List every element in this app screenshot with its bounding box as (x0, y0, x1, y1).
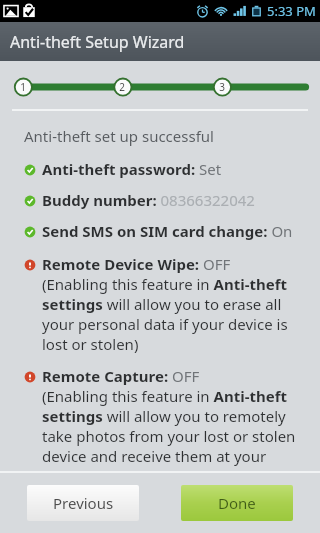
staticText: Send SMS on SIM card change: On (42, 221, 293, 241)
staticText: (Enabling this feature in Anti-theft set… (42, 274, 312, 354)
staticText: Remote Device Wipe: OFF (42, 254, 231, 274)
staticText: 2 (119, 80, 125, 94)
staticText: Anti-theft password: Set (42, 159, 222, 179)
staticText: 1 (20, 80, 26, 94)
staticText: Remote Capture: OFF (42, 366, 200, 386)
staticText: Anti-theft Setup Wizard (10, 31, 185, 53)
staticText: 3 (219, 80, 225, 94)
staticText: Previous (53, 493, 114, 513)
staticText: Anti-theft set up successful (24, 126, 214, 146)
staticText: 5:33 PM (267, 2, 316, 20)
button[interactable]: Done (181, 485, 293, 521)
staticText: (Enabling this feature in Anti-theft set… (42, 386, 312, 471)
button[interactable]: Previous (27, 485, 139, 521)
staticText: Done (218, 493, 256, 513)
staticText: Buddy number: 08366322042 (42, 190, 255, 210)
